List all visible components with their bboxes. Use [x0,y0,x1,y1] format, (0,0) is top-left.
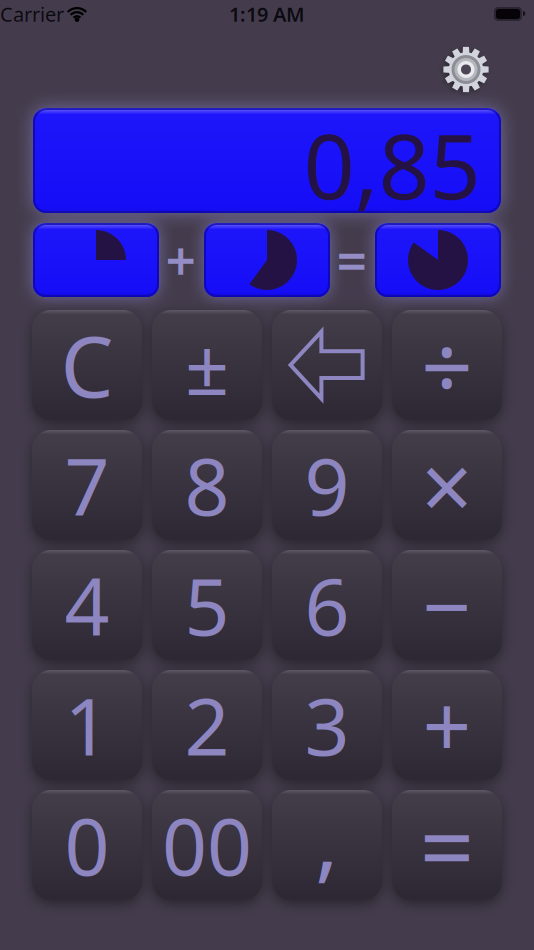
button[interactable]: 3 [272,670,382,780]
button[interactable]: Settings [443,46,489,92]
button[interactable]: Plus [392,670,502,780]
staticText: 4 [64,553,109,657]
button[interactable]: 2 [152,670,262,780]
button[interactable]: Multiply [392,430,502,540]
button[interactable]: Plus minus [152,310,262,420]
staticText: 9 [304,433,349,537]
button[interactable]: 1 [32,670,142,780]
button[interactable]: 9 [272,430,382,540]
button[interactable]: 0 [32,790,142,900]
staticText: 0 [64,793,109,897]
staticText: = [336,225,367,295]
button[interactable]: 00 [152,790,262,900]
button[interactable]: 60 percent [204,223,330,297]
staticText: 7 [64,433,109,537]
staticText: 1 [64,673,109,777]
staticText: + [165,225,196,295]
staticText: + [422,668,471,782]
button[interactable]: Equals [392,790,502,900]
staticText: ± [185,314,229,416]
staticText: 1:19 AM [229,1,305,27]
staticText: C [60,309,113,421]
staticText: = [419,781,474,909]
staticText: 2 [184,673,229,777]
button[interactable]: Divide [392,310,502,420]
staticText: , [315,780,339,896]
staticText: 8 [184,433,229,537]
button[interactable]: Comma [272,790,382,900]
staticText: ÷ [421,305,473,425]
button[interactable]: Minus [392,550,502,660]
button[interactable]: Backspace [272,310,382,420]
button[interactable]: 7 [32,430,142,540]
staticText: 0,85 [304,105,481,224]
staticText: × [421,425,473,545]
button[interactable]: 8 [152,430,262,540]
button[interactable]: 6 [272,550,382,660]
button[interactable]: Clear [32,310,142,420]
button[interactable]: 85 percent [375,223,501,297]
staticText: 6 [304,553,349,657]
button[interactable]: 25 percent [33,223,159,297]
button[interactable]: 4 [32,550,142,660]
staticText: 00 [162,793,252,897]
staticText: 3 [304,673,349,777]
button[interactable]: 5 [152,550,262,660]
staticText: 5 [184,553,229,657]
staticText: − [422,548,471,662]
staticText: Carrier [0,1,64,27]
